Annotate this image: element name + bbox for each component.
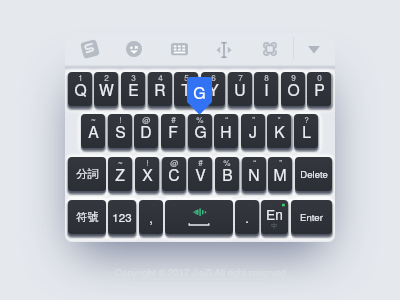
button[interactable]: @: [134, 114, 158, 150]
button[interactable]: Shortcuts: [256, 35, 284, 63]
staticText: P: [314, 78, 325, 100]
staticText: ,: [149, 208, 153, 227]
staticText: E: [128, 78, 139, 100]
staticText: %: [223, 157, 231, 169]
staticText: ~: [91, 114, 96, 126]
button[interactable]: 1: [68, 72, 92, 108]
button[interactable]: Switch to English: [261, 200, 288, 236]
button[interactable]: “: [214, 114, 238, 150]
staticText: X: [142, 163, 153, 185]
button[interactable]: “: [242, 157, 266, 193]
staticText: Enter: [300, 210, 323, 224]
staticText: 0: [317, 72, 322, 84]
button[interactable]: 2: [94, 72, 118, 108]
staticText: L: [302, 120, 311, 142]
staticText: T: [181, 78, 191, 100]
button[interactable]: #: [188, 157, 212, 193]
button[interactable]: 分詞: [68, 157, 106, 193]
staticText: “: [225, 114, 228, 126]
staticText: G: [194, 120, 207, 142]
staticText: B: [222, 163, 233, 185]
staticText: #: [171, 114, 176, 126]
button[interactable]: Space: [165, 200, 233, 236]
staticText: Copyright © 2017 JiaZi All right reserve…: [115, 265, 286, 279]
staticText: *: [277, 114, 281, 126]
staticText: 分詞: [76, 167, 99, 181]
button[interactable]: !: [135, 157, 159, 193]
button[interactable]: 8: [254, 72, 278, 108]
button[interactable]: ”: [241, 114, 265, 150]
staticText: Delete: [300, 167, 328, 181]
button[interactable]: ”: [268, 157, 292, 193]
staticText: 9: [291, 72, 296, 84]
staticText: 7: [238, 72, 243, 84]
staticText: Q: [74, 78, 87, 100]
staticText: En: [266, 204, 283, 224]
button[interactable]: ~: [81, 114, 105, 150]
staticText: Y: [208, 78, 219, 100]
button[interactable]: ?: [294, 114, 318, 150]
staticText: !: [146, 157, 149, 169]
button[interactable]: 6: [201, 72, 225, 108]
staticText: 6: [211, 72, 216, 84]
staticText: ”: [252, 114, 255, 126]
staticText: 1: [78, 72, 83, 84]
button[interactable]: 符號: [68, 200, 106, 236]
staticText: V: [195, 163, 206, 185]
button[interactable]: *: [267, 114, 291, 150]
staticText: .: [245, 208, 249, 227]
button[interactable]: Emoji: [119, 34, 149, 64]
button[interactable]: %: [188, 114, 212, 150]
button[interactable]: %: [215, 157, 239, 193]
staticText: G: [193, 81, 206, 104]
staticText: W: [99, 78, 114, 100]
staticText: U: [234, 78, 246, 100]
button[interactable]: ,: [139, 200, 163, 236]
button[interactable]: Move cursor: [209, 35, 239, 65]
button[interactable]: Delete: [295, 157, 332, 193]
staticText: C: [168, 163, 180, 185]
staticText: O: [287, 78, 300, 100]
staticText: F: [168, 120, 178, 142]
staticText: 中: [271, 222, 278, 230]
staticText: K: [274, 120, 285, 142]
staticText: S: [115, 120, 126, 142]
staticText: 123: [112, 209, 132, 226]
button[interactable]: 0: [307, 72, 331, 108]
staticText: #: [198, 157, 203, 169]
button[interactable]: #: [161, 114, 185, 150]
staticText: A: [88, 120, 99, 142]
staticText: J: [249, 120, 257, 142]
button[interactable]: 7: [228, 72, 252, 108]
button[interactable]: Keyboard layout: [164, 36, 195, 67]
button[interactable]: ~: [108, 157, 132, 193]
staticText: %: [196, 114, 204, 126]
staticText: 4: [158, 72, 163, 84]
staticText: 符號: [76, 210, 99, 224]
staticText: ~: [118, 157, 123, 169]
staticText: ?: [304, 114, 309, 126]
button[interactable]: 5: [174, 72, 198, 108]
staticText: Z: [115, 163, 125, 185]
staticText: 3: [131, 72, 136, 84]
button[interactable]: !: [108, 114, 132, 150]
button[interactable]: .: [235, 200, 259, 236]
staticText: N: [248, 163, 260, 185]
staticText: I: [264, 78, 269, 100]
button[interactable]: Hide keyboard: [301, 39, 327, 65]
staticText: !: [119, 114, 122, 126]
button[interactable]: 123: [108, 200, 136, 236]
button[interactable]: Enter: [291, 200, 332, 236]
staticText: R: [154, 78, 166, 100]
button[interactable]: 3: [121, 72, 145, 108]
button[interactable]: Sogou input method: [72, 31, 108, 67]
staticText: 5: [184, 72, 189, 84]
button[interactable]: @: [162, 157, 186, 193]
staticText: D: [140, 120, 152, 142]
staticText: @: [142, 114, 151, 126]
staticText: @: [170, 157, 179, 169]
staticText: M: [273, 163, 287, 185]
button[interactable]: 9: [281, 72, 305, 108]
staticText: 2: [104, 72, 109, 84]
button[interactable]: 4: [148, 72, 172, 108]
